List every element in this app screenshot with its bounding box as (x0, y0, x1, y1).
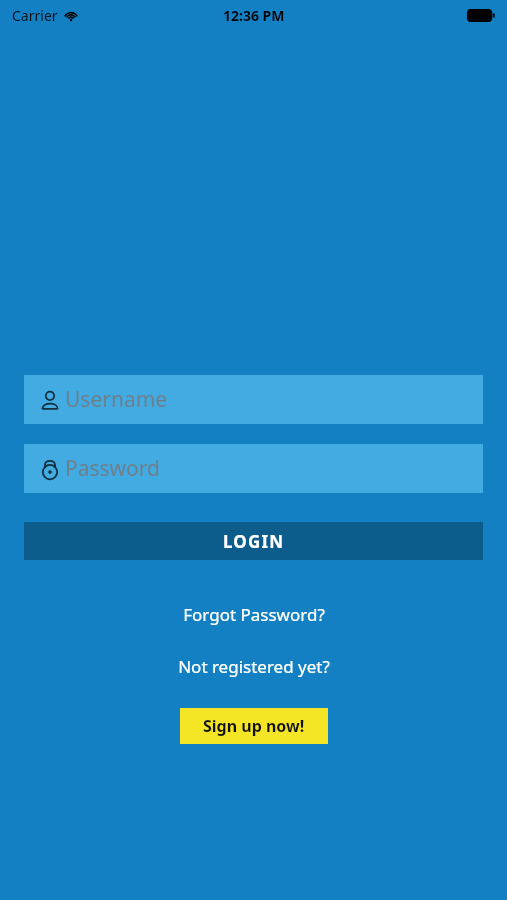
button[interactable]: Username (24, 375, 483, 424)
button[interactable]: Password (24, 444, 483, 493)
button[interactable]: Forgot Password? (0, 603, 507, 626)
staticText: Forgot Password? (183, 603, 325, 626)
staticText: Carrier (12, 6, 58, 25)
button[interactable]: Sign up now! (180, 708, 328, 744)
button[interactable]: LOGIN (24, 522, 483, 560)
staticText: LOGIN (223, 530, 285, 553)
staticText: Not registered yet? (178, 655, 330, 678)
staticText: 12:36 PM (223, 6, 285, 25)
button[interactable]: Not registered yet? (0, 655, 507, 678)
staticText: Username (65, 385, 168, 414)
staticText: Sign up now! (203, 715, 305, 737)
staticText: Password (65, 454, 160, 483)
